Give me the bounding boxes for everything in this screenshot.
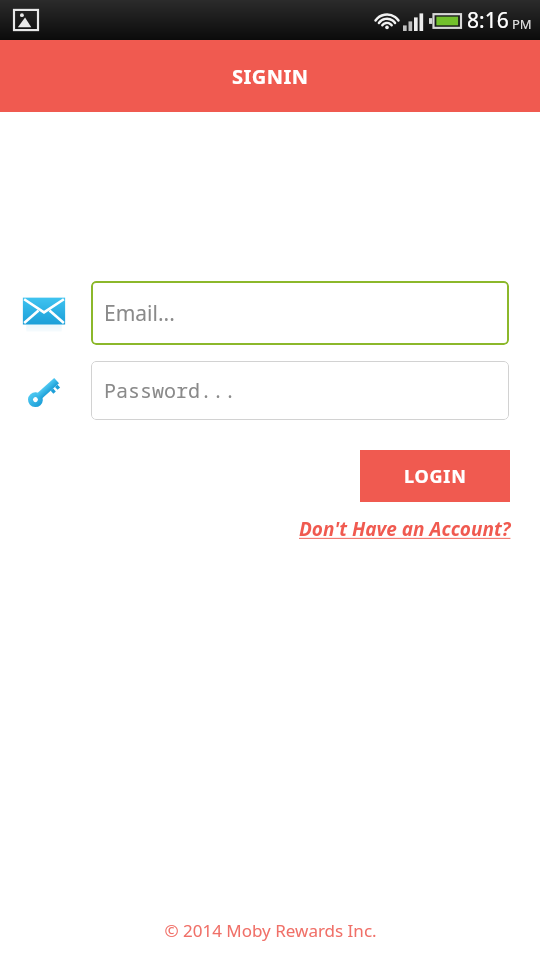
staticText: Don't Have an Account?	[299, 516, 511, 542]
staticText: Password...	[104, 377, 236, 404]
staticText: © 2014 Moby Rewards Inc.	[164, 919, 377, 942]
staticText: PM	[512, 15, 532, 33]
staticText: 8:16	[467, 6, 509, 35]
other: Email	[20, 289, 68, 337]
button[interactable]: Don't Have an Account?	[297, 513, 513, 545]
button[interactable]: Email...	[91, 281, 509, 345]
button[interactable]: LOGIN	[360, 450, 510, 502]
staticText: Email...	[104, 299, 175, 328]
staticText: LOGIN	[404, 464, 467, 489]
other: Password	[20, 367, 68, 415]
staticText: SIGNIN	[232, 63, 309, 90]
button[interactable]: Password...	[91, 361, 509, 420]
